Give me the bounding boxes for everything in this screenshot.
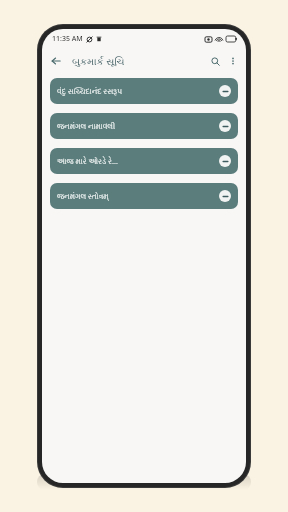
staticText: જનમંગલ સ્તોત્રમ્ <box>57 191 215 201</box>
staticText: આજ મારે ઓરડે રે… <box>57 156 215 166</box>
staticText: વંદુ સચ્ચિદાનંદ રસરૂપ <box>57 86 215 96</box>
button[interactable]: Search <box>206 52 224 70</box>
staticText: 11:35 AM <box>52 34 83 44</box>
button[interactable]: Remove bookmark <box>219 85 231 97</box>
button[interactable]: વંદુ સચ્ચિદાનંદ રસરૂપ <box>50 78 238 104</box>
button[interactable]: Remove bookmark <box>219 155 231 167</box>
button[interactable]: જનમંગલ સ્તોત્રમ્ <box>50 183 238 209</box>
button[interactable]: Remove bookmark <box>219 120 231 132</box>
button[interactable]: જનમંગલ નામાવલી <box>50 113 238 139</box>
button[interactable]: More options <box>224 52 242 70</box>
button[interactable]: આજ મારે ઓરડે રે… <box>50 148 238 174</box>
button[interactable]: Remove bookmark <box>219 190 231 202</box>
staticText: બુકમાર્ક સૂચિ <box>72 54 206 68</box>
staticText: જનમંગલ નામાવલી <box>57 121 215 131</box>
button[interactable]: Back <box>47 52 65 70</box>
